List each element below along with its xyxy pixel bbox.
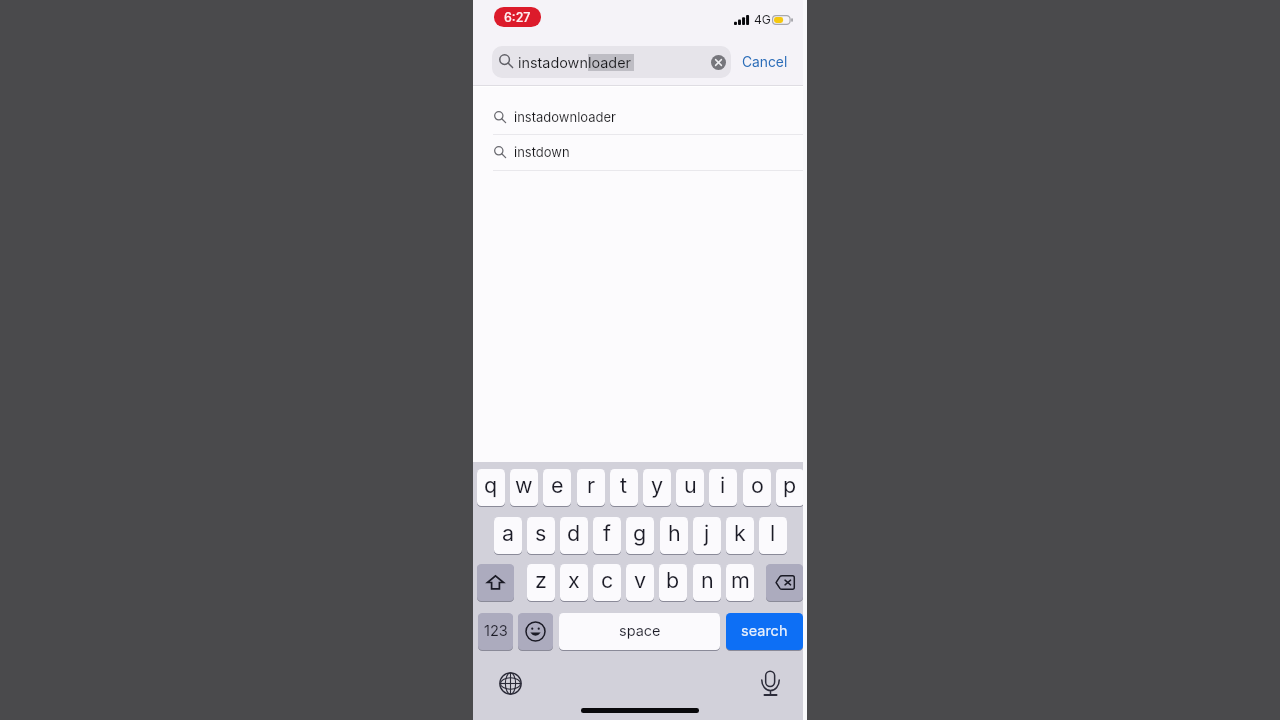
- button[interactable]: i: [709, 469, 737, 506]
- button[interactable]: Emoji: [518, 613, 553, 650]
- staticText: instadownloader: [514, 109, 616, 125]
- button[interactable]: Cancel: [737, 46, 793, 78]
- staticText: w: [515, 472, 533, 498]
- button[interactable]: r: [577, 469, 605, 506]
- staticText: z: [535, 567, 547, 593]
- staticText: x: [568, 567, 580, 593]
- staticText: search: [741, 622, 788, 640]
- button[interactable]: Dictate: [761, 671, 780, 696]
- button[interactable]: Backspace: [766, 564, 803, 601]
- button[interactable]: g: [626, 517, 654, 554]
- staticText: e: [551, 472, 564, 498]
- staticText: g: [633, 520, 647, 546]
- button[interactable]: y: [643, 469, 671, 506]
- staticText: a: [502, 520, 515, 546]
- button[interactable]: h: [660, 517, 688, 554]
- button[interactable]: Shift: [477, 564, 514, 601]
- button[interactable]: q: [477, 469, 505, 506]
- staticText: Cancel: [742, 54, 788, 71]
- button[interactable]: f: [593, 517, 621, 554]
- staticText: instdown: [514, 144, 570, 160]
- button[interactable]: z: [527, 564, 555, 601]
- button[interactable]: u: [676, 469, 704, 506]
- staticText: m: [731, 567, 750, 593]
- staticText: k: [734, 520, 746, 546]
- staticText: s: [535, 520, 547, 546]
- button[interactable]: m: [726, 564, 754, 601]
- staticText: o: [751, 472, 764, 498]
- staticText: n: [701, 567, 714, 593]
- button[interactable]: Clear text: [711, 55, 726, 70]
- button[interactable]: a: [494, 517, 522, 554]
- button[interactable]: t: [610, 469, 638, 506]
- staticText: instadown: [518, 54, 588, 71]
- button[interactable]: instadown: [492, 46, 731, 78]
- staticText: h: [668, 520, 681, 546]
- staticText: q: [484, 472, 498, 498]
- button[interactable]: w: [510, 469, 538, 506]
- button[interactable]: c: [593, 564, 621, 601]
- button[interactable]: p: [776, 469, 804, 506]
- staticText: c: [601, 567, 614, 593]
- staticText: i: [720, 472, 726, 498]
- button[interactable]: o: [743, 469, 771, 506]
- staticText: b: [666, 567, 680, 593]
- button[interactable]: d: [560, 517, 588, 554]
- staticText: loader: [588, 54, 631, 71]
- button[interactable]: l: [759, 517, 787, 554]
- staticText: l: [770, 520, 776, 546]
- button[interactable]: e: [543, 469, 571, 506]
- button[interactable]: instdown: [473, 134, 806, 170]
- button[interactable]: x: [560, 564, 588, 601]
- button[interactable]: Change keyboard: [499, 672, 522, 695]
- staticText: p: [783, 472, 797, 498]
- button[interactable]: n: [693, 564, 721, 601]
- staticText: v: [634, 567, 647, 593]
- staticText: f: [603, 520, 611, 546]
- button[interactable]: v: [626, 564, 654, 601]
- button[interactable]: space: [559, 613, 720, 650]
- staticText: t: [620, 472, 628, 498]
- button[interactable]: b: [659, 564, 687, 601]
- staticText: 123: [484, 622, 508, 640]
- button[interactable]: search: [726, 613, 803, 650]
- staticText: u: [684, 472, 697, 498]
- button[interactable]: j: [693, 517, 721, 554]
- staticText: r: [587, 472, 596, 498]
- button[interactable]: s: [527, 517, 555, 554]
- staticText: y: [651, 472, 664, 498]
- staticText: 6:27: [504, 10, 531, 25]
- staticText: d: [567, 520, 581, 546]
- staticText: space: [619, 622, 661, 640]
- button[interactable]: k: [726, 517, 754, 554]
- staticText: 4G: [754, 12, 771, 27]
- staticText: j: [704, 520, 710, 546]
- button[interactable]: instadownloader: [473, 99, 806, 135]
- button[interactable]: 123: [478, 613, 513, 650]
